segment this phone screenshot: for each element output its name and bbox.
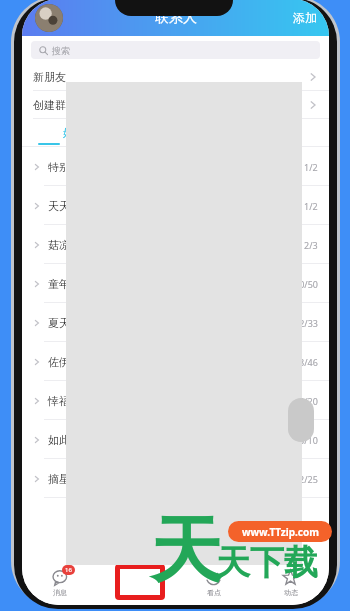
staticText: 2/3: [304, 239, 318, 251]
button[interactable]: 添加: [281, 4, 329, 31]
staticText: 消息: [53, 588, 67, 597]
staticText: 创建群聊: [33, 98, 77, 112]
button[interactable]: 特别关心: [22, 147, 329, 186]
staticText: 9/20: [299, 395, 318, 407]
button[interactable]: 菇凉们: [22, 225, 329, 264]
staticText: 悻福: [48, 394, 70, 408]
button[interactable]: 好友: [22, 119, 125, 147]
staticText: 2/25: [299, 473, 318, 485]
button[interactable]: 悻福: [22, 381, 329, 420]
button[interactable]: 新朋友: [22, 63, 329, 91]
button[interactable]: 看点: [175, 564, 252, 605]
staticText: 菇凉们: [48, 238, 81, 252]
button[interactable]: Profile avatar: [35, 4, 63, 32]
staticText: 1/2: [304, 200, 318, 212]
staticText: 特别关心: [48, 160, 92, 174]
button[interactable]: 天天向上: [22, 186, 329, 225]
button[interactable]: 夏天: [22, 303, 329, 342]
staticText: www.TTzip.com: [242, 525, 319, 539]
staticText: 夏天: [48, 316, 70, 330]
button[interactable]: 摘星: [22, 459, 329, 498]
staticText: 新朋友: [33, 70, 66, 84]
button[interactable]: 佐伊: [22, 342, 329, 381]
staticText: 童年: [48, 277, 70, 291]
staticText: 30/50: [294, 278, 318, 290]
staticText: 添加: [293, 10, 317, 25]
staticText: 天: [150, 506, 222, 597]
button[interactable]: 如此: [22, 420, 329, 459]
staticText: 天天向上: [48, 199, 92, 213]
button[interactable]: 联系人: [98, 564, 175, 605]
staticText: 联系人: [155, 9, 197, 27]
button[interactable]: 童年: [22, 264, 329, 303]
button[interactable]: 设备: [227, 119, 329, 147]
staticText: 如此: [48, 433, 70, 447]
staticText: 佐伊: [48, 355, 70, 369]
staticText: 1/2: [304, 161, 318, 173]
button[interactable]: 16: [22, 564, 98, 605]
staticText: 天下载: [216, 541, 318, 584]
staticText: 好友: [63, 126, 85, 140]
staticText: 16: [65, 566, 72, 574]
staticText: 3/10: [299, 434, 318, 446]
button[interactable]: 动态: [252, 564, 329, 605]
staticText: 搜索: [52, 45, 70, 56]
button[interactable]: 搜索: [31, 41, 320, 59]
staticText: 摘星: [48, 472, 70, 486]
staticText: 12/33: [294, 317, 318, 329]
staticText: 动态: [284, 588, 298, 597]
staticText: 8/46: [299, 356, 318, 368]
button[interactable]: 创建群聊: [22, 91, 329, 119]
staticText: 联系人: [126, 588, 147, 597]
staticText: 看点: [207, 588, 221, 597]
